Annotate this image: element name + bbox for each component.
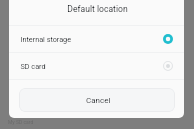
staticText: Internal storage <box>20 35 71 43</box>
other: Selected <box>163 34 173 44</box>
staticText: SD card <box>20 62 46 70</box>
staticText: Default location <box>67 4 128 14</box>
button[interactable]: Cancel <box>19 88 175 112</box>
other: Not selected <box>163 61 173 71</box>
staticText: Cancel <box>86 96 111 105</box>
staticText: My SD card <box>8 119 34 125</box>
button[interactable]: SD card <box>9 53 184 79</box>
button[interactable]: Internal storage <box>9 26 184 52</box>
